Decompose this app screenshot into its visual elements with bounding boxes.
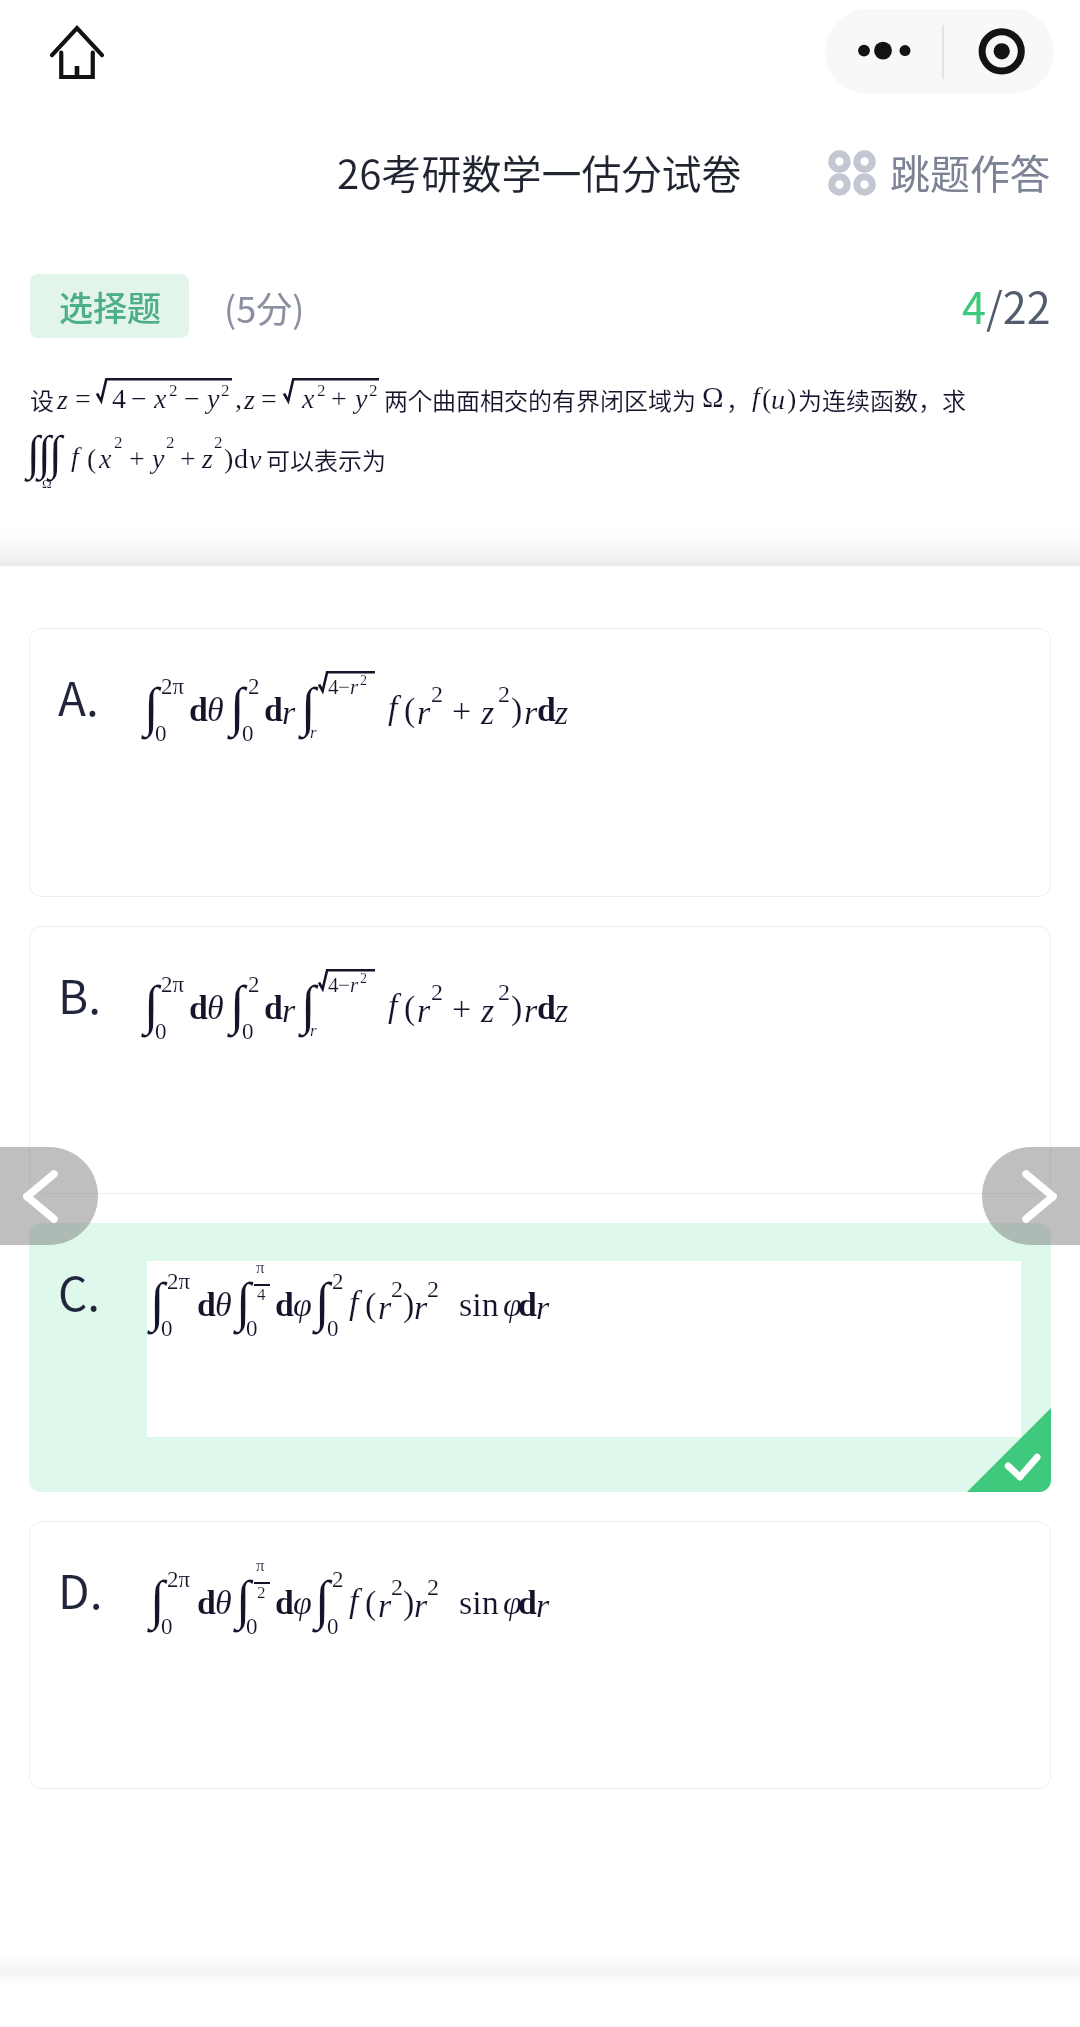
button[interactable]: 选择题 xyxy=(30,274,189,338)
staticText: f xyxy=(388,987,398,1025)
staticText: r xyxy=(350,973,359,996)
button[interactable]: More options xyxy=(825,9,940,94)
button[interactable]: C. xyxy=(29,1223,1051,1492)
staticText: d xyxy=(537,989,556,1027)
staticText: r xyxy=(417,992,431,1030)
staticText: y xyxy=(152,443,165,474)
staticText: ∫ xyxy=(27,426,41,479)
staticText: ∫ xyxy=(38,426,52,479)
staticText: ) xyxy=(224,443,234,474)
staticText: r xyxy=(536,1289,550,1327)
staticText: r xyxy=(350,675,359,698)
staticText: z xyxy=(244,384,255,415)
staticText: ∫ xyxy=(236,1272,251,1332)
staticText: ∫ xyxy=(150,1272,165,1332)
staticText: ( xyxy=(87,443,97,474)
staticText: 4 xyxy=(328,973,339,996)
staticText: ∫ xyxy=(49,426,63,479)
staticText: − xyxy=(338,675,350,698)
staticText: 2 xyxy=(369,381,378,400)
staticText: r xyxy=(524,694,538,732)
staticText: r xyxy=(414,1289,428,1327)
staticText: ∫ xyxy=(301,975,316,1035)
staticText: + xyxy=(331,383,347,414)
staticText: 0 xyxy=(161,1316,173,1341)
staticText: r xyxy=(417,694,431,732)
staticText: d xyxy=(197,1286,216,1324)
staticText: θ xyxy=(215,1584,232,1622)
staticText: 2π xyxy=(167,1567,191,1592)
staticText: z xyxy=(202,443,213,474)
staticText: 2 xyxy=(427,1276,439,1303)
staticText: D. xyxy=(58,1556,103,1623)
staticText: d xyxy=(537,691,556,729)
staticText: + xyxy=(180,443,196,474)
staticText: 2π xyxy=(167,1269,191,1294)
staticText: θ xyxy=(215,1286,232,1324)
button[interactable]: D. xyxy=(29,1521,1051,1789)
staticText: 26考研数学一估分试卷 xyxy=(337,143,742,201)
staticText: B. xyxy=(58,961,102,1028)
staticText: ∫ xyxy=(315,1570,330,1630)
staticText: 4 xyxy=(112,383,126,414)
staticText: ∫ xyxy=(315,1272,330,1332)
staticText: sin xyxy=(459,1584,499,1622)
staticText: + xyxy=(452,692,472,730)
staticText: 0 xyxy=(155,721,167,746)
staticText: 0 xyxy=(327,1316,339,1341)
staticText: ∫ xyxy=(230,975,245,1035)
staticText: 2 xyxy=(114,433,123,452)
staticText: ∫ xyxy=(236,1570,251,1630)
button[interactable]: 跳题作答 xyxy=(820,136,1064,208)
staticText: Ω xyxy=(702,381,724,413)
staticText: r xyxy=(536,1587,550,1625)
staticText: d xyxy=(275,1286,294,1324)
staticText: + xyxy=(129,443,145,474)
staticText: − xyxy=(184,383,200,414)
staticText: ∫ xyxy=(144,975,159,1035)
staticText: φ xyxy=(503,1584,522,1622)
staticText: 2 xyxy=(166,433,175,452)
staticText: r xyxy=(282,694,296,732)
staticText: 2 xyxy=(431,979,443,1006)
button[interactable]: Next question xyxy=(982,1147,1080,1245)
button[interactable]: Previous question xyxy=(0,1147,98,1245)
staticText: d xyxy=(234,443,248,474)
staticText: π xyxy=(256,1258,265,1277)
staticText: d xyxy=(264,691,283,729)
staticText: ) xyxy=(403,1584,415,1622)
staticText: ∫ xyxy=(150,1570,165,1630)
staticText: x xyxy=(99,443,112,474)
staticText: θ xyxy=(207,989,224,1027)
staticText: d xyxy=(518,1286,537,1324)
staticText: 2 xyxy=(221,381,230,400)
staticText: 选择题 xyxy=(59,282,161,331)
staticText: = xyxy=(75,383,91,414)
button[interactable]: Close xyxy=(945,9,1054,94)
staticText: z xyxy=(481,694,495,732)
staticText: ∫ xyxy=(230,677,245,737)
staticText: 4 xyxy=(328,675,339,698)
button[interactable]: A. xyxy=(29,628,1051,897)
staticText: ∫ xyxy=(301,677,316,737)
staticText: d xyxy=(189,691,208,729)
staticText: 2 xyxy=(427,1574,439,1601)
staticText: − xyxy=(338,973,350,996)
staticText: /22 xyxy=(986,274,1051,336)
staticText: r xyxy=(310,723,317,742)
staticText: z xyxy=(555,992,569,1030)
staticText: x xyxy=(154,383,167,414)
button[interactable]: Home xyxy=(26,1,128,103)
button[interactable]: B. xyxy=(29,926,1051,1194)
staticText: φ xyxy=(293,1584,312,1622)
staticText: d xyxy=(189,989,208,1027)
staticText: 为连续函数，求 xyxy=(798,382,966,417)
staticText: 2 xyxy=(332,1567,344,1592)
staticText: 2 xyxy=(391,1574,403,1601)
staticText: ( xyxy=(365,1584,377,1622)
staticText: 0 xyxy=(246,1316,258,1341)
staticText: v xyxy=(249,444,262,475)
staticText: 2 xyxy=(360,673,367,689)
staticText: 设 xyxy=(30,382,54,417)
staticText: ( xyxy=(365,1286,377,1324)
